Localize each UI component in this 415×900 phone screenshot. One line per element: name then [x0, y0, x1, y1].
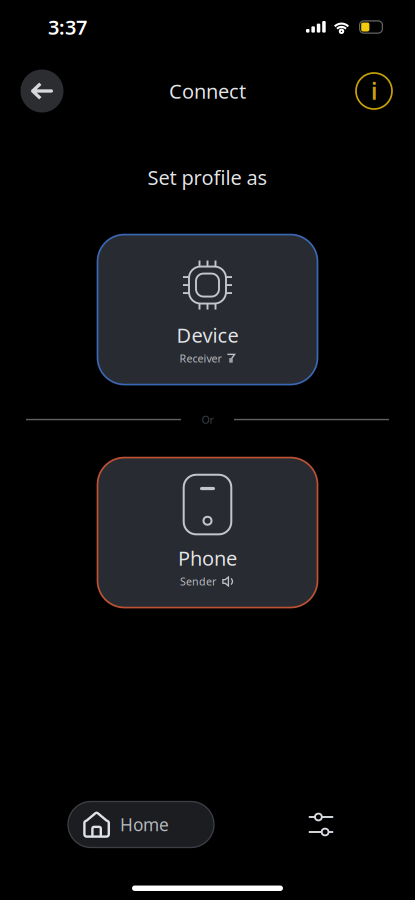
staticText: Receiver — [179, 351, 221, 366]
staticText: Connect — [169, 78, 246, 104]
staticText: Set profile as — [147, 164, 267, 191]
staticText: Device — [176, 322, 238, 348]
button[interactable]: Device — [97, 235, 317, 385]
button[interactable]: Home — [68, 801, 214, 847]
button[interactable]: Settings — [299, 802, 343, 846]
button[interactable]: Phone — [97, 458, 317, 608]
button[interactable]: Information — [351, 68, 397, 114]
staticText: i — [371, 76, 377, 106]
staticText: Sender — [180, 574, 216, 589]
staticText: Home — [120, 813, 169, 836]
button[interactable]: Back — [19, 68, 65, 114]
staticText: Or — [201, 412, 213, 427]
staticText: 3:37 — [48, 14, 87, 40]
staticText: Phone — [178, 545, 237, 571]
